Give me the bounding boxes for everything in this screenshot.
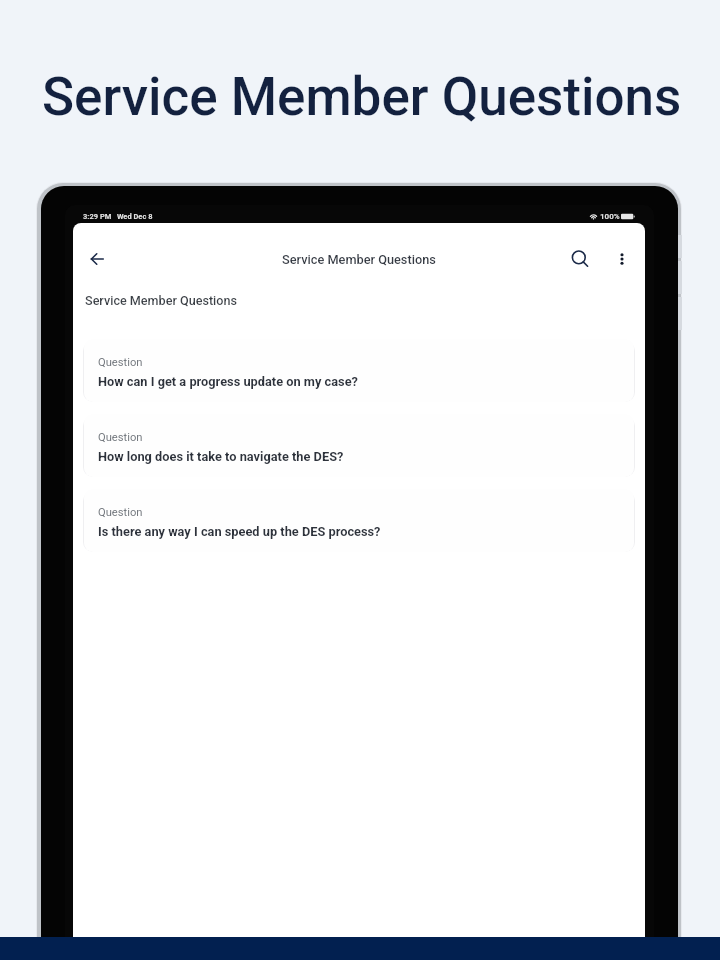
button[interactable]: Question: [84, 339, 634, 402]
button[interactable]: Back: [78, 240, 116, 278]
staticText: 3:29 PM Wed Dec 8: [83, 212, 153, 221]
staticText: Question: [98, 431, 143, 444]
staticText: Is there any way I can speed up the DES …: [98, 524, 381, 539]
staticText: Question: [98, 506, 143, 519]
staticText: Question: [98, 356, 143, 369]
staticText: How can I get a progress update on my ca…: [98, 374, 358, 389]
button[interactable]: Search: [561, 240, 599, 278]
staticText: Service Member Questions: [42, 66, 682, 128]
button[interactable]: Question: [84, 414, 634, 477]
staticText: How long does it take to navigate the DE…: [98, 449, 344, 464]
button[interactable]: More options: [603, 240, 641, 278]
staticText: 100%: [600, 212, 620, 221]
staticText: Service Member Questions: [85, 293, 237, 308]
button[interactable]: Question: [84, 489, 634, 552]
staticText: Service Member Questions: [282, 252, 436, 267]
